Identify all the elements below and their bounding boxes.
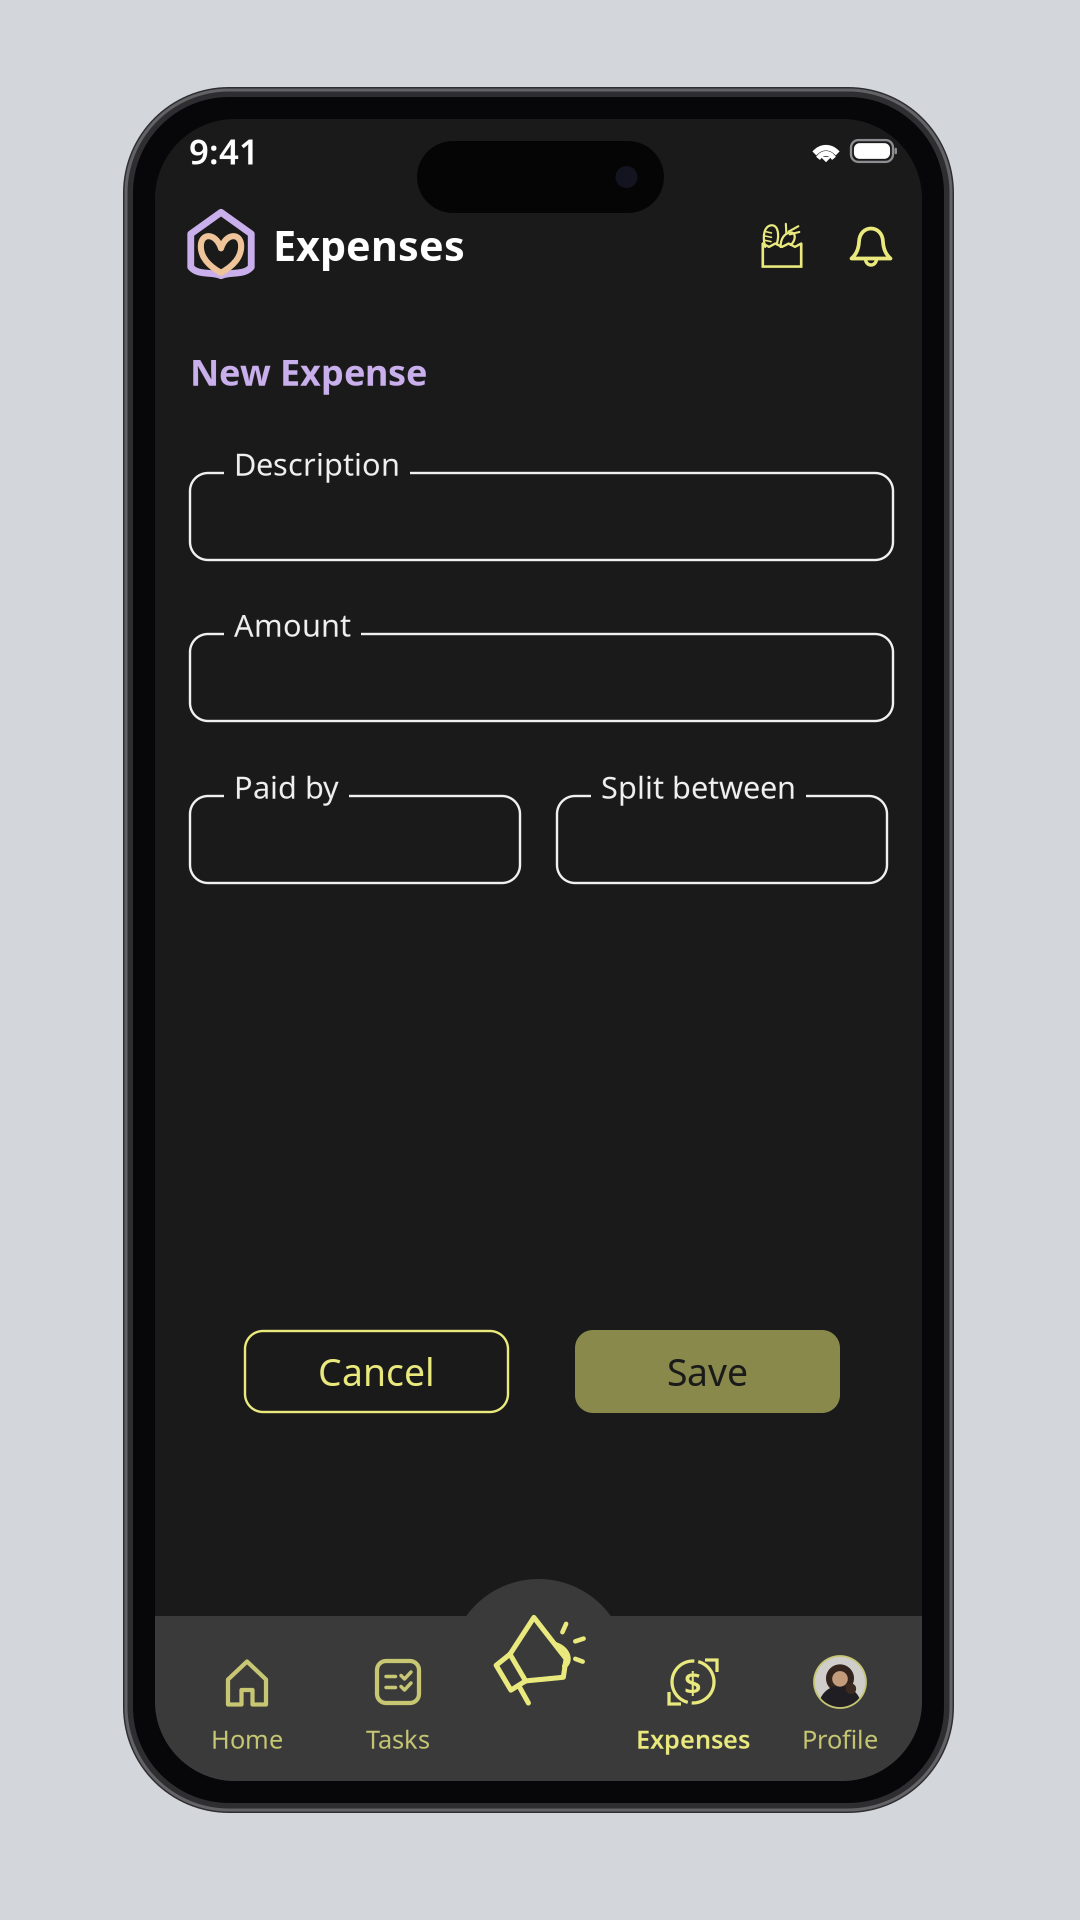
staticText: Expenses xyxy=(636,1722,750,1756)
staticText: Home xyxy=(211,1722,283,1756)
staticText: Split between xyxy=(601,767,796,807)
staticText: Expenses xyxy=(273,218,465,272)
staticText: Paid by xyxy=(234,767,339,807)
button[interactable]: Cancel xyxy=(245,1331,508,1412)
button[interactable]: Tasks xyxy=(303,1616,493,1768)
staticText: Cancel xyxy=(318,1347,435,1396)
button[interactable]: Profile xyxy=(745,1616,935,1768)
staticText: Amount xyxy=(234,605,351,645)
staticText: New Expense xyxy=(190,348,427,396)
staticText: 9:41 xyxy=(189,128,259,174)
staticText: $ xyxy=(684,1662,702,1702)
button[interactable]: $ xyxy=(598,1616,788,1768)
staticText: Description xyxy=(234,444,400,484)
staticText: Save xyxy=(667,1347,748,1396)
staticText: Profile xyxy=(802,1722,878,1756)
button[interactable]: Notifications xyxy=(837,210,905,278)
staticText: Tasks xyxy=(366,1722,430,1756)
button[interactable]: Shopping list xyxy=(748,210,816,278)
button[interactable]: Home xyxy=(152,1616,342,1768)
button[interactable]: Save xyxy=(575,1330,840,1413)
button[interactable]: Announcements xyxy=(473,1592,603,1722)
